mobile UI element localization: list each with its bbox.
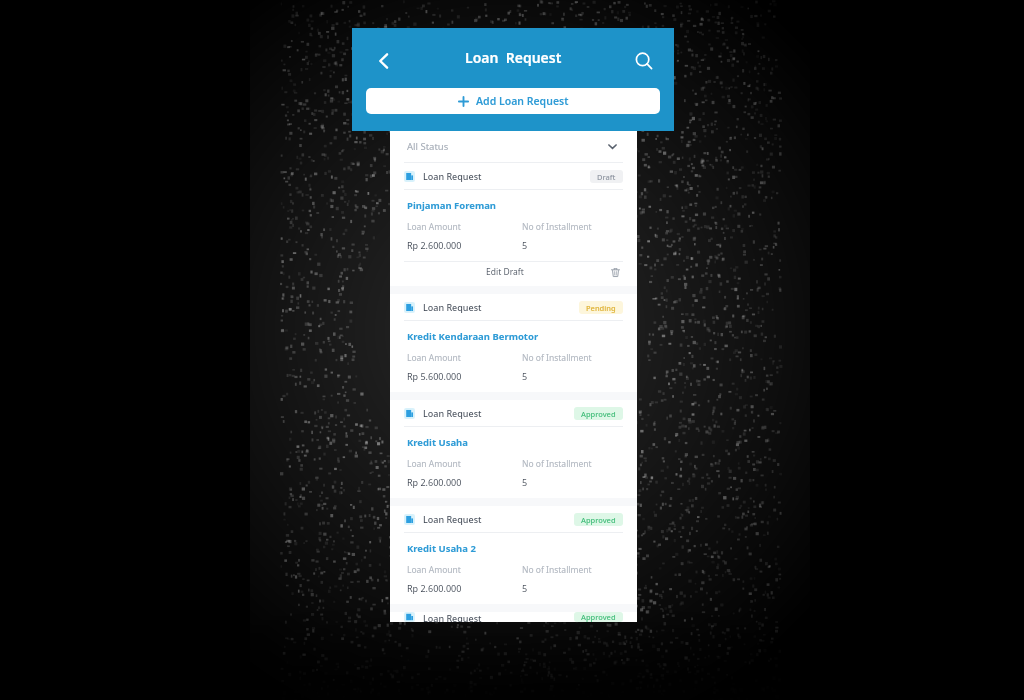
button[interactable]: Loan Request [390,294,637,392]
staticText: Loan Amount [407,221,461,233]
button[interactable]: Approved [574,407,623,420]
staticText: Rp 5.600.000 [407,370,462,382]
staticText: Draft [597,172,616,182]
button[interactable]: Approved [574,513,623,526]
staticText: Approved [581,515,616,525]
staticText: Loan Request [423,513,482,525]
staticText: Approved [581,612,616,622]
staticText: Kredit Kendaraan Bermotor [407,330,539,343]
button[interactable]: All Status [390,131,637,162]
staticText: Pinjaman Foreman [407,199,497,212]
button[interactable]: Loan Request [390,400,637,498]
staticText: Loan Amount [407,564,461,576]
staticText: Pending [586,303,616,313]
staticText: No of Installment [522,352,592,364]
button[interactable]: Search [624,41,664,81]
button[interactable]: Loan Request [390,506,637,604]
button[interactable]: Add Loan Request [366,88,660,114]
staticText: All Status [407,140,449,153]
staticText: No of Installment [522,564,592,576]
staticText: 5 [522,370,528,382]
staticText: Rp 2.600.000 [407,582,462,594]
button[interactable]: Draft [590,170,623,183]
staticText: Loan Amount [407,458,461,470]
staticText: Loan Request [465,48,562,67]
staticText: Add Loan Request [476,94,569,108]
button[interactable]: Delete [607,264,623,280]
button[interactable]: Loan Request [390,163,637,286]
staticText: No of Installment [522,221,592,233]
staticText: Loan Request [423,407,482,419]
staticText: Loan Request [423,301,482,313]
button[interactable]: Edit Draft [482,266,528,278]
staticText: Rp 2.600.000 [407,239,462,251]
staticText: Loan Amount [407,352,461,364]
staticText: Kredit Usaha 2 [407,542,476,555]
staticText: 5 [522,476,528,488]
staticText: Edit Draft [486,266,524,278]
staticText: Loan Request [423,170,482,182]
button[interactable]: Back [364,41,404,81]
button[interactable]: Pending [579,301,623,314]
button[interactable]: Loan Request [390,612,637,622]
staticText: 5 [522,582,528,594]
button[interactable]: Approved [574,612,623,622]
staticText: Loan Request [423,612,482,622]
staticText: Kredit Usaha [407,436,468,449]
staticText: 5 [522,239,528,251]
staticText: Rp 2.600.000 [407,476,462,488]
staticText: Approved [581,409,616,419]
staticText: No of Installment [522,458,592,470]
